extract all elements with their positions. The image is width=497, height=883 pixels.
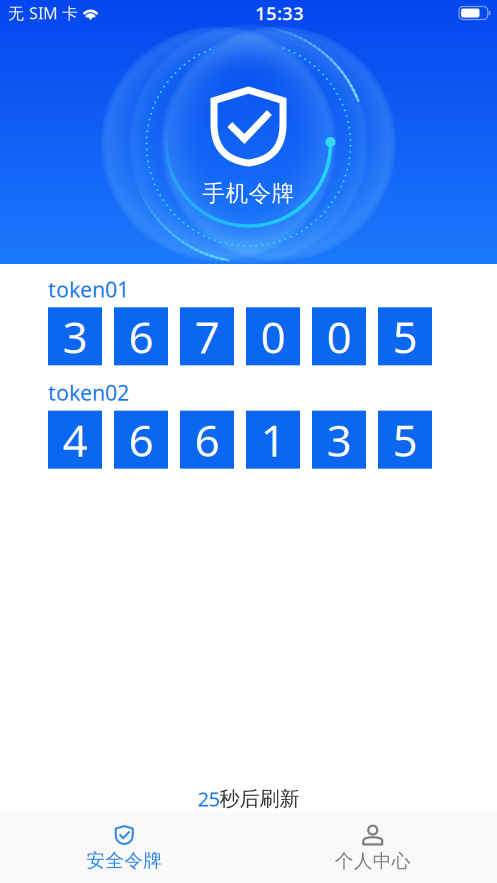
staticText: 无 SIM 卡 [8,2,78,24]
staticText: 0 [326,307,351,365]
staticText: 安全令牌 [86,849,162,872]
staticText: 25 [197,785,219,812]
staticText: 7 [194,307,219,365]
staticText: 1 [260,410,285,469]
staticText: 个人中心 [335,849,411,872]
staticText: 秒后刷新 [219,786,299,811]
staticText: 6 [194,410,219,469]
staticText: 3 [62,307,87,365]
button[interactable]: 个人中心 [248,811,497,883]
staticText: 5 [392,307,417,365]
staticText: 3 [326,410,351,469]
button[interactable]: 安全令牌 [0,812,248,883]
staticText: 5 [392,410,417,469]
staticText: 4 [62,410,87,469]
staticText: 手机令牌 [202,180,294,207]
staticText: token01 [48,275,129,303]
staticText: 0 [260,307,285,365]
staticText: 6 [128,410,153,469]
staticText: token02 [48,378,129,407]
staticText: 15:33 [255,1,304,25]
staticText: 6 [128,307,153,365]
